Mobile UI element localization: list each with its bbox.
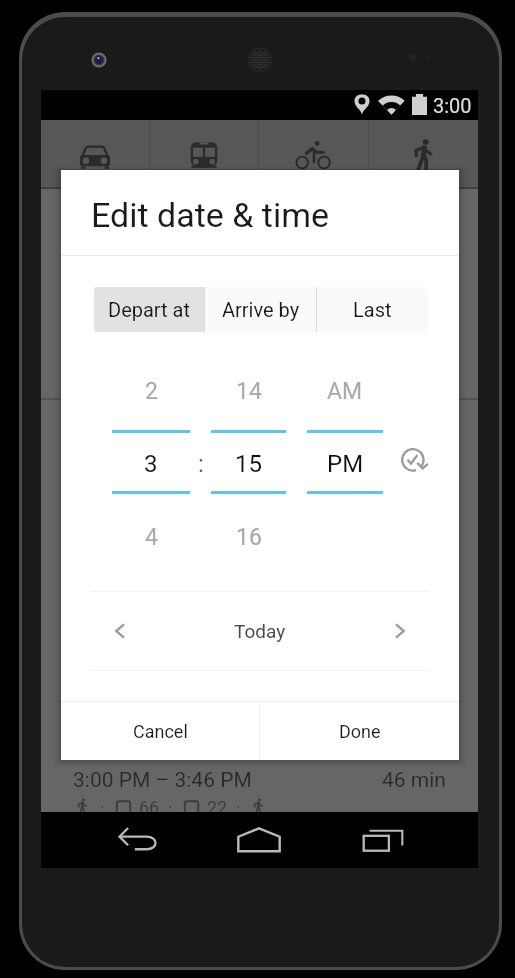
button[interactable]: Previous day	[98, 609, 142, 653]
button[interactable]: 2	[112, 366, 190, 416]
button[interactable]: 15	[211, 440, 286, 488]
staticText: Edit date & time	[91, 195, 330, 235]
button[interactable]: Driving	[41, 120, 149, 189]
button[interactable]: Transit	[150, 120, 258, 189]
staticText: :	[198, 450, 204, 478]
button[interactable]: Depart at	[94, 287, 204, 332]
staticText: 2	[145, 378, 158, 405]
staticText: Depart at	[108, 298, 191, 321]
button[interactable]: Cancel	[61, 702, 259, 760]
staticText: 22	[207, 797, 228, 818]
staticText: 3:00	[433, 94, 472, 117]
staticText: Today	[234, 620, 286, 642]
button[interactable]: Cycling	[259, 120, 368, 189]
button[interactable]: Last	[317, 287, 428, 332]
button[interactable]: Reset to now	[399, 446, 431, 478]
staticText: 46 min	[382, 768, 446, 793]
staticText: Cancel	[133, 721, 188, 742]
staticText: 15	[235, 450, 262, 478]
button[interactable]: Walking	[369, 120, 478, 189]
button[interactable]: AM	[307, 366, 383, 416]
button[interactable]: Back	[117, 818, 161, 862]
staticText: Arrive by	[222, 298, 300, 321]
button[interactable]: Today	[234, 620, 286, 642]
staticText: AM	[327, 378, 363, 405]
button[interactable]: 16	[211, 512, 286, 562]
button[interactable]: 14	[211, 366, 286, 416]
staticText: ·	[168, 797, 173, 818]
staticText: Last	[353, 298, 392, 321]
staticText: ·	[236, 797, 241, 818]
button[interactable]: 4	[112, 512, 190, 562]
staticText: 66	[139, 797, 160, 818]
staticText: 14	[236, 378, 262, 405]
staticText: 3:00 PM – 3:46 PM	[73, 768, 252, 793]
button[interactable]: Home	[237, 818, 281, 862]
staticText: 16	[236, 524, 262, 551]
staticText: 3	[144, 450, 158, 478]
button[interactable]: Arrive by	[205, 287, 316, 332]
button[interactable]: 3	[112, 440, 190, 488]
button[interactable]: Next day	[378, 609, 422, 653]
staticText: PM	[327, 450, 364, 478]
staticText: 4	[145, 524, 158, 551]
button[interactable]: Done	[260, 702, 459, 760]
button[interactable]: Recent apps	[361, 818, 405, 862]
button[interactable]: PM	[307, 440, 383, 488]
staticText: Done	[339, 721, 381, 742]
staticText: ·	[100, 797, 105, 818]
